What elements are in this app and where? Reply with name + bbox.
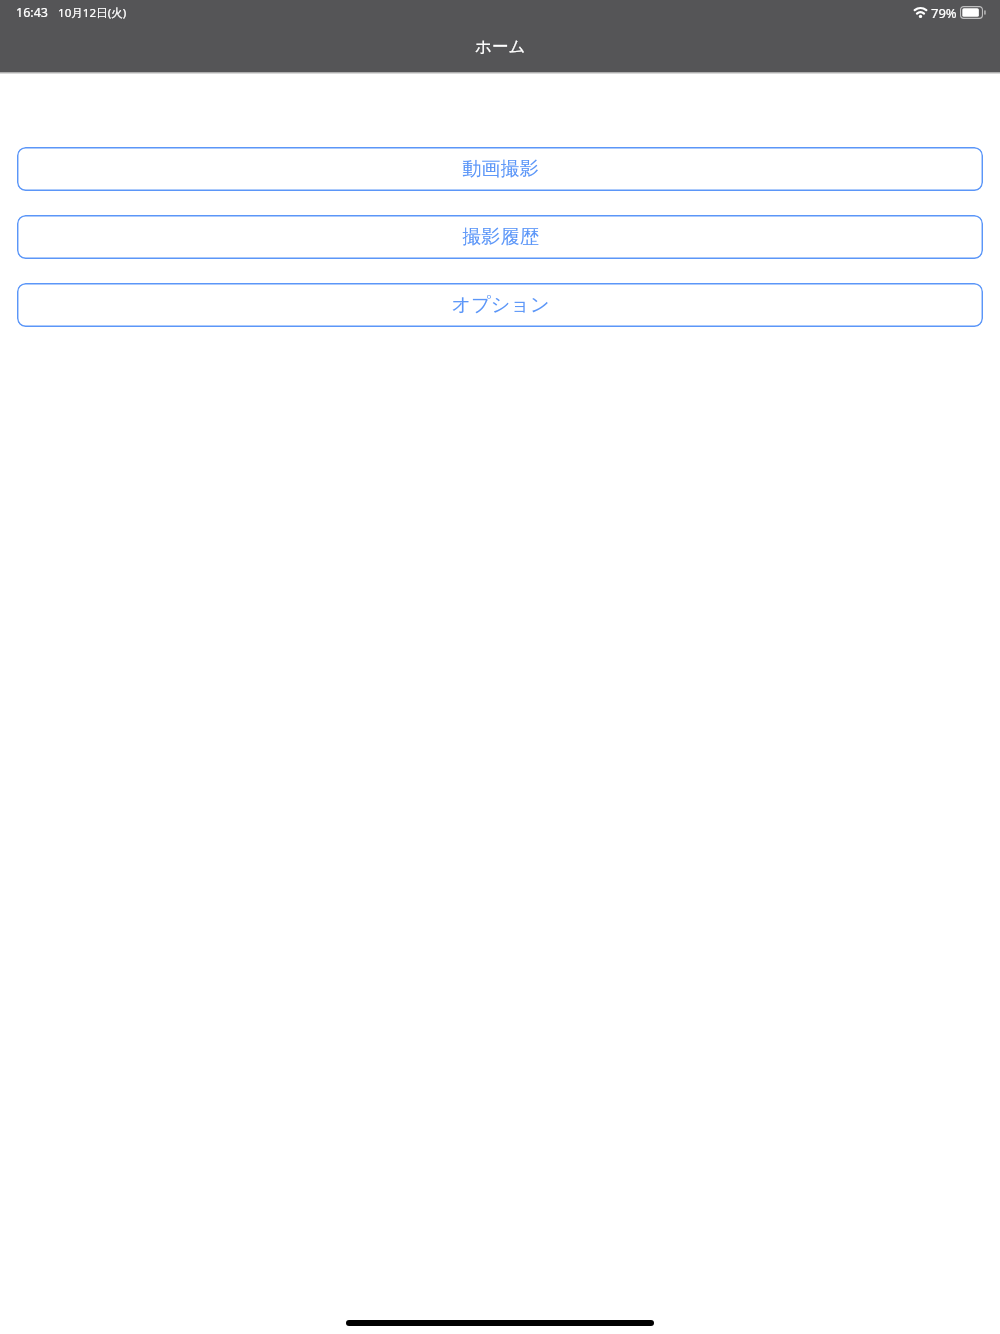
staticText: ホーム [475,36,526,57]
staticText: 16:43 [16,4,48,21]
staticText: 10月12日(火) [58,5,127,21]
button[interactable]: 撮影履歴 [17,215,983,259]
button[interactable]: 動画撮影 [17,147,983,191]
other: Battery 79 percent [960,6,986,19]
staticText: 79% [931,4,957,22]
staticText: 撮影履歴 [462,225,539,249]
other: Wi-Fi connected [913,1,928,24]
staticText: オプション [451,293,550,317]
button[interactable]: オプション [17,283,983,327]
staticText: 動画撮影 [462,157,539,181]
